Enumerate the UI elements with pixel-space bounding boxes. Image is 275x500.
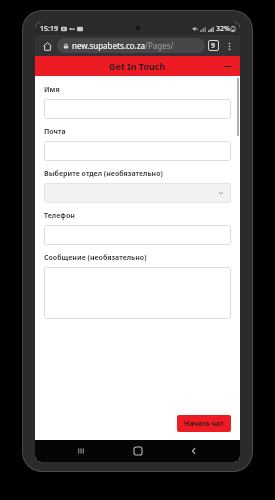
staticText: Get In Touch [109, 60, 166, 72]
staticText: /Pages/ [145, 40, 174, 51]
staticText: Почта [44, 127, 66, 137]
button[interactable] [44, 225, 231, 245]
button[interactable]: Back [183, 440, 205, 462]
button[interactable]: More options [222, 39, 236, 53]
button[interactable] [44, 267, 231, 319]
staticText: Начать чат [184, 419, 224, 429]
staticText: 9 [211, 41, 216, 51]
button[interactable]: Get In Touch [35, 56, 240, 76]
button[interactable]: Home [39, 38, 55, 54]
staticText: Имя [44, 85, 60, 95]
button[interactable]: Начать чат [177, 415, 231, 432]
staticText: 32% [216, 24, 230, 34]
button[interactable] [44, 99, 231, 119]
button[interactable]: Home [127, 440, 149, 462]
staticText: Выберите отдел (необязательно) [44, 169, 163, 179]
staticText: Сообщение (необязательно) [44, 253, 147, 263]
staticText: 15:19 [40, 24, 58, 34]
button[interactable]: new.supabets.co.za [57, 38, 205, 53]
button[interactable]: Выберите отдел [44, 183, 231, 203]
staticText: new.supabets.co.za [72, 40, 145, 51]
button[interactable] [44, 141, 231, 161]
button[interactable]: Tabs [208, 40, 219, 51]
staticText: Телефон [44, 211, 75, 221]
button[interactable]: Recents [70, 440, 92, 462]
